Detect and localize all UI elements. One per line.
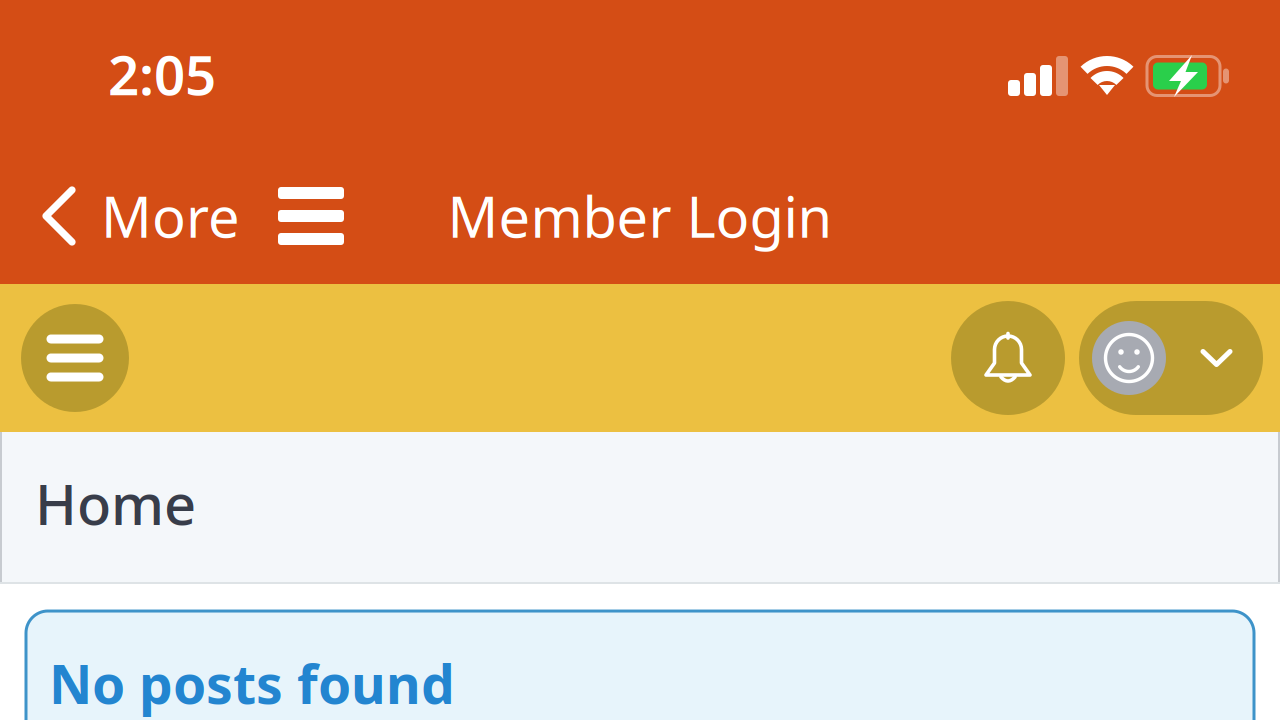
button[interactable]: Notifications — [951, 301, 1065, 415]
staticText: 2:05 — [108, 38, 216, 110]
button[interactable]: Site menu — [21, 304, 129, 412]
button[interactable]: Account — [1079, 301, 1263, 415]
staticText: No posts found — [49, 648, 455, 719]
staticText: Home — [35, 466, 196, 540]
button[interactable]: Menu — [251, 156, 371, 276]
staticText: Member Login — [447, 179, 832, 253]
staticText: More — [101, 179, 240, 253]
button[interactable]: More — [0, 156, 240, 276]
